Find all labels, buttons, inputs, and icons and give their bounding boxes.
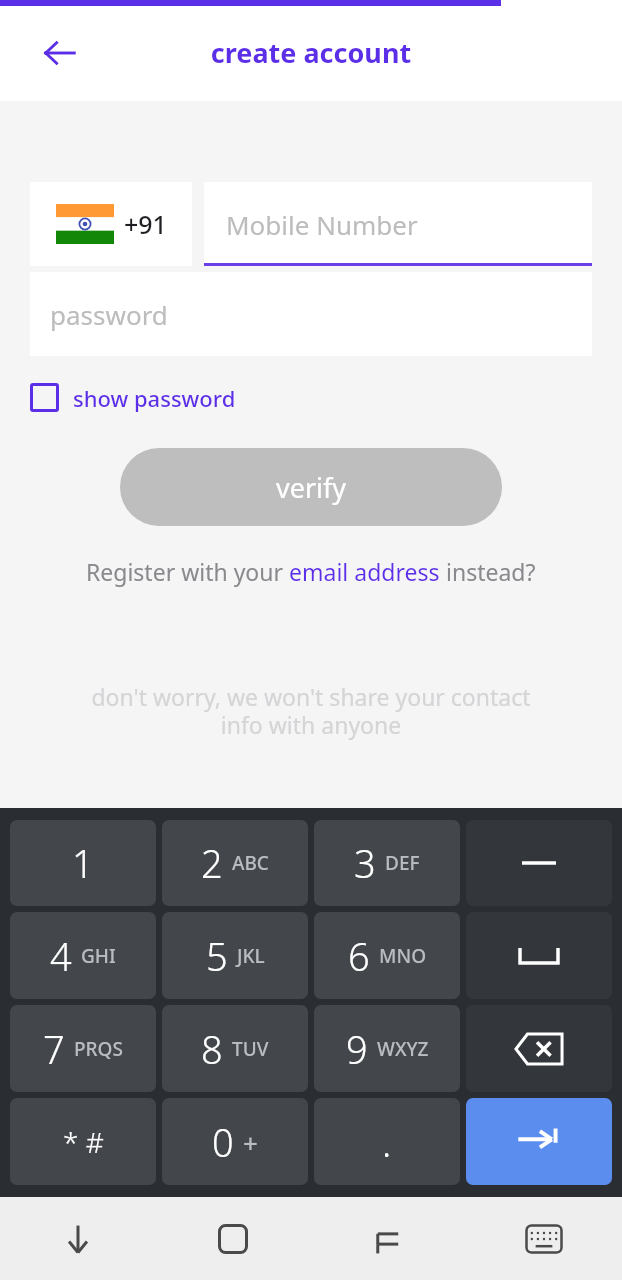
staticText: . <box>382 1116 392 1168</box>
button[interactable]: 7 <box>10 1005 156 1092</box>
staticText: 4 <box>50 930 72 982</box>
staticText: WXYZ <box>377 1036 429 1062</box>
staticText: create account <box>0 34 622 71</box>
staticText: instead? <box>440 556 536 587</box>
staticText: JKL <box>237 943 265 969</box>
staticText: 2 <box>201 837 223 889</box>
staticText: password <box>50 297 168 332</box>
button[interactable]: +91 <box>30 182 192 266</box>
staticText: 1 <box>72 837 94 889</box>
staticText: 8 <box>201 1023 223 1075</box>
button[interactable]: 3 <box>314 820 460 906</box>
button[interactable]: Mobile Number <box>204 182 592 266</box>
staticText: Register with your <box>86 556 289 587</box>
staticText: 5 <box>206 930 228 982</box>
button[interactable]: 8 <box>162 1005 308 1092</box>
staticText: 3 <box>354 837 376 889</box>
button[interactable]: show password <box>30 375 236 420</box>
staticText: DEF <box>385 850 420 876</box>
staticText: MNO <box>379 943 427 969</box>
button[interactable]: 1 <box>10 820 156 906</box>
button[interactable]: Enter <box>466 1098 612 1185</box>
staticText: * # <box>63 1123 104 1161</box>
button[interactable]: . <box>314 1098 460 1185</box>
staticText: PRQS <box>74 1036 123 1062</box>
button[interactable]: email address <box>289 556 440 587</box>
staticText: don't worry, we won't share your contact… <box>36 681 586 741</box>
button[interactable]: Back <box>30 23 90 83</box>
button[interactable]: Home <box>155 1197 310 1280</box>
button[interactable]: 0 <box>162 1098 308 1185</box>
button[interactable]: 2 <box>162 820 308 906</box>
staticText: 9 <box>346 1023 368 1075</box>
staticText: 0 <box>212 1116 234 1168</box>
button[interactable]: 6 <box>314 912 460 999</box>
button[interactable]: 4 <box>10 912 156 999</box>
button[interactable]: * # <box>10 1098 156 1185</box>
staticText: GHI <box>81 943 116 969</box>
staticText: verify <box>276 469 347 506</box>
staticText: + <box>243 1125 258 1160</box>
staticText: Mobile Number <box>226 207 418 242</box>
staticText: 7 <box>43 1023 65 1075</box>
staticText: TUV <box>232 1036 269 1062</box>
staticText: show password <box>73 383 236 413</box>
button[interactable]: 9 <box>314 1005 460 1092</box>
staticText: ABC <box>232 850 269 876</box>
button[interactable]: Dash <box>466 820 612 906</box>
button[interactable]: Recents <box>310 1197 466 1280</box>
button[interactable]: Space <box>466 912 612 999</box>
button[interactable]: Switch keyboard <box>466 1197 622 1280</box>
staticText: 6 <box>348 930 370 982</box>
button[interactable]: password <box>30 272 592 356</box>
button[interactable]: 5 <box>162 912 308 999</box>
button[interactable]: Hide keyboard <box>0 1197 155 1280</box>
button[interactable]: Backspace <box>466 1005 612 1092</box>
staticText: +91 <box>124 207 167 241</box>
button[interactable]: verify <box>120 448 502 526</box>
